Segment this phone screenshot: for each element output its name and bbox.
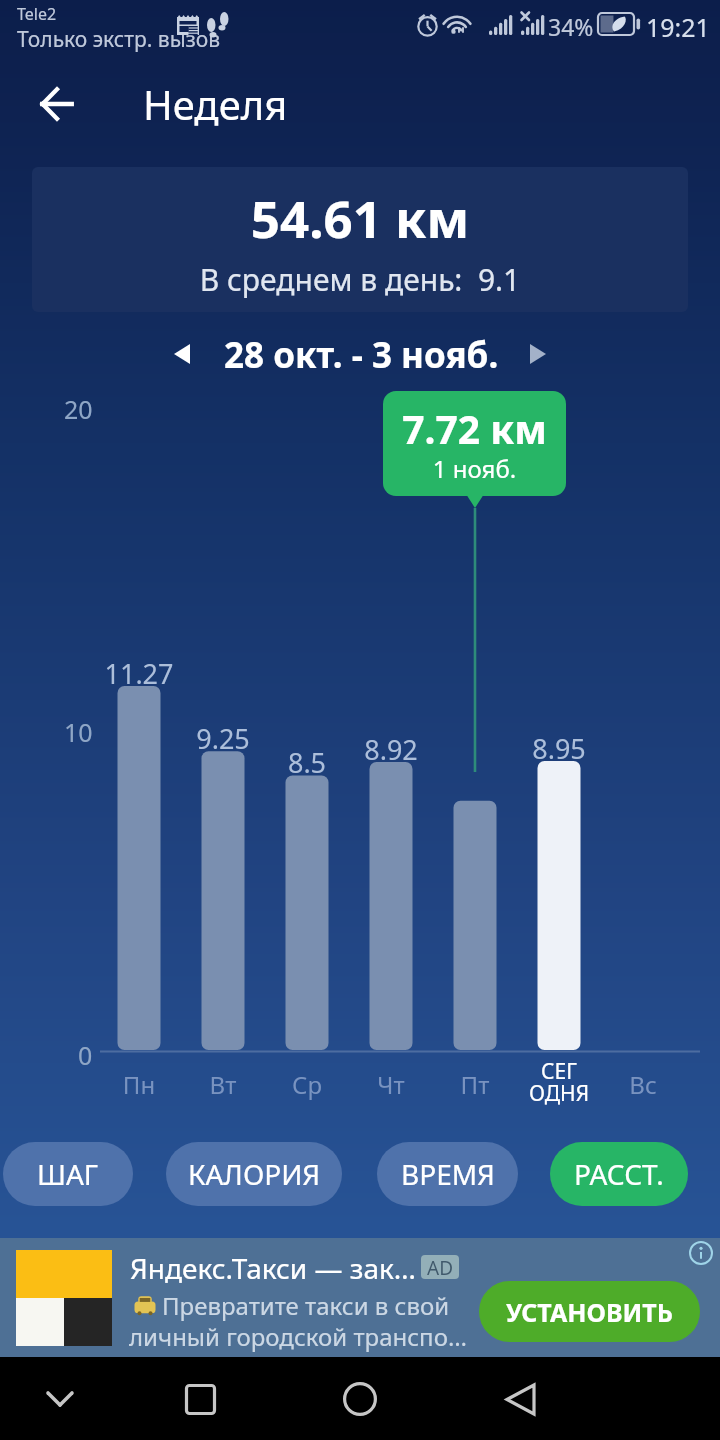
staticText: В среднем в день: 9.1 <box>32 259 688 300</box>
button[interactable]: Next week <box>508 330 568 378</box>
staticText: Вс <box>573 1068 713 1101</box>
staticText: 20 <box>64 392 93 426</box>
button[interactable]: Previous week <box>152 330 212 378</box>
staticText: Ср <box>237 1068 377 1101</box>
button[interactable]: Hide keyboard <box>20 1368 100 1430</box>
button[interactable]: Back <box>480 1368 560 1430</box>
staticText: Неделя <box>143 77 288 131</box>
staticText: Вт <box>153 1068 293 1101</box>
staticText: 19:21 <box>646 10 710 44</box>
staticText: Яндекс.Такси — зак… <box>130 1249 417 1287</box>
button[interactable]: Recents <box>160 1368 240 1430</box>
staticText: 7.72 км <box>383 402 566 455</box>
button[interactable]: ВРЕМЯ <box>377 1142 518 1206</box>
staticText: УСТАНОВИТЬ <box>506 1295 673 1329</box>
button[interactable]: ШАГ <box>3 1142 133 1206</box>
staticText: 8.92 <box>321 731 461 768</box>
staticText: РАССТ. <box>574 1155 664 1193</box>
staticText: 0 <box>78 1038 93 1072</box>
staticText: 10 <box>64 715 93 749</box>
staticText: 11.27 <box>69 655 209 692</box>
staticText: AD <box>427 1255 454 1279</box>
staticText: Превратите такси в свой <box>162 1289 450 1322</box>
button[interactable]: УСТАНОВИТЬ <box>479 1281 700 1342</box>
button[interactable]: РАССТ. <box>550 1142 688 1206</box>
staticText: ШАГ <box>37 1155 99 1193</box>
staticText: 54.61 км <box>32 183 688 252</box>
staticText: 34% <box>548 11 594 42</box>
staticText: СЕГ ОДНЯ <box>479 1057 639 1107</box>
button[interactable]: 54.61 км <box>32 167 688 312</box>
button[interactable]: Ad info <box>688 1240 714 1266</box>
staticText: Пн <box>69 1068 209 1101</box>
staticText: 8.95 <box>489 730 629 767</box>
staticText: 1 нояб. <box>383 452 566 485</box>
staticText: 9.25 <box>153 720 293 757</box>
button[interactable]: Home <box>320 1368 400 1430</box>
button[interactable]: Back <box>20 67 94 141</box>
staticText: Только экстр. вызов <box>17 25 221 54</box>
staticText: Пт <box>405 1068 545 1101</box>
staticText: 8.5 <box>237 744 377 781</box>
staticText: ВРЕМЯ <box>401 1155 495 1193</box>
staticText: Чт <box>321 1068 461 1101</box>
button[interactable]: 7.72 км <box>383 391 566 509</box>
staticText: Tele2 <box>17 3 57 25</box>
button[interactable]: КАЛОРИЯ <box>166 1142 342 1206</box>
staticText: КАЛОРИЯ <box>188 1155 321 1193</box>
staticText: личный городской транспо… <box>129 1320 467 1353</box>
staticText: 28 окт. - 3 нояб. <box>224 331 499 379</box>
